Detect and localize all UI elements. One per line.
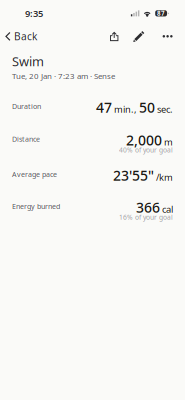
staticText: Average pace bbox=[12, 169, 57, 179]
button[interactable]: Back bbox=[0, 24, 44, 48]
staticText: 366 cal bbox=[136, 198, 173, 217]
staticText: 23'55" /km bbox=[113, 166, 173, 185]
staticText: 2,000 m bbox=[126, 131, 173, 149]
button[interactable]: More options bbox=[157, 28, 178, 45]
staticText: 9:35 bbox=[25, 7, 43, 20]
staticText: Back bbox=[14, 29, 37, 43]
staticText: Duration bbox=[12, 101, 41, 111]
staticText: 87 bbox=[157, 9, 165, 18]
staticText: 40% of your goal bbox=[119, 145, 173, 154]
staticText: 16% of your goal bbox=[119, 213, 173, 222]
button[interactable]: Share bbox=[101, 28, 127, 45]
staticText: 47 min., 50 sec. bbox=[96, 98, 173, 117]
button[interactable]: Edit bbox=[127, 28, 157, 45]
staticText: Swim bbox=[12, 52, 44, 70]
staticText: Tue, 20 Jan · 7:23 am · Sense bbox=[12, 70, 115, 81]
staticText: Distance bbox=[12, 134, 40, 144]
staticText: Energy burned bbox=[12, 201, 60, 211]
